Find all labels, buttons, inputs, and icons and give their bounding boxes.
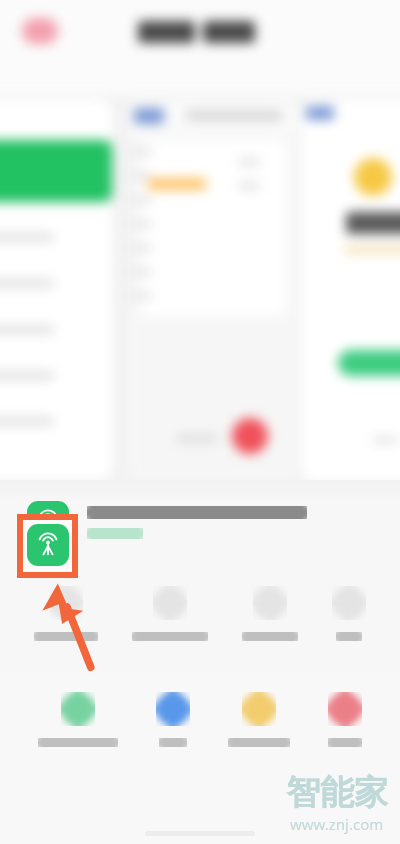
staticText: www.znj.com <box>290 814 384 834</box>
button[interactable] <box>242 586 298 641</box>
button[interactable]: Broadcast app <box>0 480 400 564</box>
button[interactable] <box>38 692 118 747</box>
button[interactable] <box>156 692 190 747</box>
other: Pointer arrow <box>38 578 104 670</box>
staticText: 智能家 <box>286 771 388 814</box>
other: Broadcast app <box>27 501 69 543</box>
button[interactable] <box>332 586 366 641</box>
button[interactable] <box>132 586 208 641</box>
button[interactable] <box>34 586 98 641</box>
button[interactable] <box>228 692 290 747</box>
button[interactable] <box>328 692 362 747</box>
